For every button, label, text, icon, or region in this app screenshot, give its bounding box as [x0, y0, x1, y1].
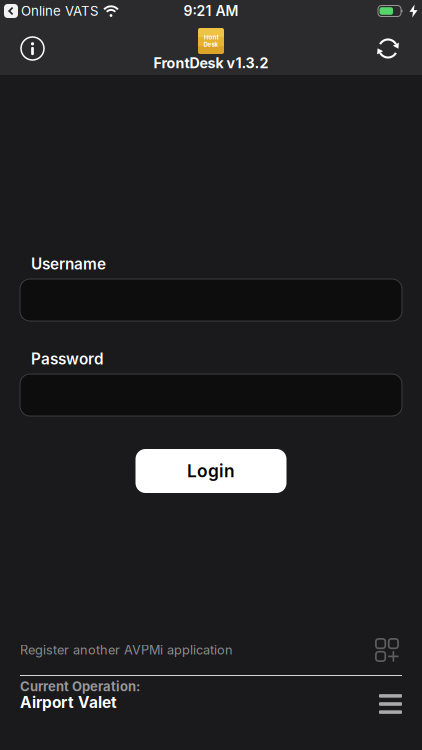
button[interactable]: Username text field	[20, 279, 402, 321]
staticText: FrontDesk v1.3.2	[153, 54, 268, 72]
button[interactable]: Back to Online VATS	[4, 3, 98, 19]
staticText: Online VATS	[21, 3, 98, 19]
button[interactable]: Info	[0, 37, 44, 60]
staticText: Password	[31, 350, 104, 368]
staticText: Airport Valet	[20, 693, 117, 712]
button[interactable]: Register another AVPMi application	[0, 638, 422, 662]
button[interactable]: Refresh	[375, 36, 422, 60]
staticText: Front Desk	[203, 34, 218, 48]
staticText: 9:21 AM	[183, 2, 238, 19]
button[interactable]: Menu	[379, 684, 402, 705]
button[interactable]: Login	[135, 449, 286, 493]
staticText: Username	[31, 255, 106, 273]
staticText: Current Operation:	[20, 679, 140, 694]
staticText: Register another AVPMi application	[20, 642, 233, 658]
staticText: Login	[187, 460, 235, 481]
button[interactable]: Password text field	[20, 374, 402, 416]
